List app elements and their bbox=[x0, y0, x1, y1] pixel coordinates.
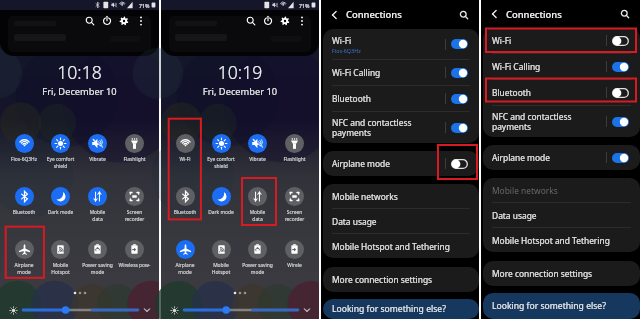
button[interactable]: Wi-Fi bbox=[612, 36, 629, 46]
button[interactable]: Wi-Fi Calling bbox=[451, 68, 468, 78]
staticText: Flashlight bbox=[276, 156, 313, 163]
button[interactable]: Bluetooth bbox=[612, 88, 629, 98]
button[interactable]: Expand bbox=[302, 305, 312, 315]
button[interactable]: Looking for something else? bbox=[483, 293, 640, 319]
button[interactable]: Airplane mode bbox=[612, 153, 629, 163]
button[interactable]: Airplane mode bbox=[167, 237, 203, 289]
staticText: Airplane mode bbox=[167, 262, 203, 275]
button[interactable]: Screen recorder bbox=[116, 184, 153, 237]
staticText: Mobile networks bbox=[492, 185, 558, 196]
button[interactable]: Eye comfort shield bbox=[203, 131, 239, 184]
button[interactable]: Back bbox=[327, 8, 341, 22]
button[interactable]: More options bbox=[294, 13, 310, 29]
staticText: Mobile networks bbox=[332, 191, 398, 202]
button[interactable]: Vibrate bbox=[239, 131, 276, 184]
staticText: Fios-6Q3Hz bbox=[6, 156, 42, 163]
button[interactable]: Power saving mode bbox=[239, 237, 276, 289]
staticText: More connection settings bbox=[492, 268, 593, 279]
button[interactable]: Mobile networks bbox=[323, 184, 479, 208]
staticText: 71% bbox=[139, 2, 150, 9]
button[interactable]: Wi-Fi bbox=[167, 131, 203, 184]
staticText: More connection settings bbox=[332, 274, 433, 285]
staticText: Mobile Hotspot and Tethering bbox=[332, 241, 450, 252]
staticText: Fri, December 10 bbox=[0, 85, 159, 98]
button[interactable]: Fios-6Q3Hz bbox=[6, 131, 42, 184]
button[interactable]: Eye comfort shield bbox=[42, 131, 79, 184]
button[interactable]: More options bbox=[133, 13, 149, 29]
staticText: 10:18 bbox=[0, 60, 159, 84]
button[interactable]: NFC and contactless payments bbox=[612, 117, 629, 127]
button[interactable]: Bluetooth bbox=[483, 80, 640, 105]
button[interactable]: Wirele bbox=[276, 237, 313, 289]
button[interactable] bbox=[184, 304, 298, 316]
button[interactable]: Bluetooth bbox=[167, 184, 203, 237]
button[interactable]: Vibrate bbox=[79, 131, 116, 184]
button[interactable]: Mobile Hotspot and Tethering bbox=[483, 228, 640, 252]
button[interactable]: Mobile Hotspot and Tethering bbox=[323, 234, 479, 258]
button[interactable]: NFC and contactless payments bbox=[323, 112, 479, 143]
button[interactable]: Airplane mode bbox=[451, 159, 468, 169]
button[interactable]: Screen recorder bbox=[276, 184, 313, 237]
button[interactable]: Mobile Hotspot bbox=[203, 237, 239, 289]
staticText: Mobile data bbox=[239, 209, 276, 222]
button[interactable]: Bluetooth bbox=[6, 184, 42, 237]
button[interactable]: Bluetooth bbox=[451, 94, 468, 104]
button[interactable]: Back bbox=[487, 7, 501, 21]
button[interactable]: Looking for something else? bbox=[323, 299, 479, 319]
button[interactable]: Mobile Hotspot bbox=[42, 237, 79, 289]
button[interactable]: More connection settings bbox=[323, 267, 479, 292]
button[interactable]: More connection settings bbox=[483, 261, 640, 286]
button[interactable]: Wi-Fi bbox=[323, 29, 479, 59]
staticText: Wi-Fi bbox=[492, 35, 512, 46]
button[interactable]: Power saving mode bbox=[79, 237, 116, 289]
staticText: Wi-Fi Calling bbox=[332, 67, 381, 78]
staticText: Airplane mode bbox=[6, 262, 42, 275]
button[interactable]: Flashlight bbox=[116, 131, 153, 184]
button[interactable]: Airplane mode bbox=[483, 145, 640, 170]
staticText: Looking for something else? bbox=[492, 300, 606, 312]
button[interactable]: Search bbox=[243, 13, 259, 29]
staticText: Data usage bbox=[492, 210, 537, 221]
button[interactable]: Wi-Fi bbox=[451, 39, 468, 49]
button[interactable]: Expand bbox=[142, 305, 152, 315]
staticText: Data usage bbox=[332, 216, 377, 227]
button[interactable]: Mobile networks bbox=[483, 178, 640, 202]
staticText: 10:19 bbox=[161, 60, 319, 84]
button[interactable]: Wireless pow- bbox=[116, 237, 153, 289]
button[interactable]: Search bbox=[618, 7, 632, 21]
button[interactable]: Wi-Fi Calling bbox=[483, 54, 640, 79]
button[interactable]: Settings bbox=[277, 13, 293, 29]
button[interactable]: Settings bbox=[116, 13, 132, 29]
button[interactable]: Search bbox=[457, 8, 471, 22]
button[interactable]: Data usage bbox=[483, 203, 640, 227]
button[interactable]: Dark mode bbox=[203, 184, 239, 237]
button[interactable]: Power off bbox=[99, 13, 115, 29]
staticText: Mobile Hotspot bbox=[42, 262, 79, 275]
staticText: Bluetooth bbox=[332, 93, 371, 104]
button[interactable]: NFC and contactless payments bbox=[451, 123, 468, 133]
staticText: Screen recorder bbox=[276, 209, 313, 222]
button[interactable]: Data usage bbox=[323, 209, 479, 233]
staticText: Fios-6Q3Hz bbox=[332, 47, 361, 54]
button[interactable]: Airplane mode bbox=[6, 237, 42, 289]
button[interactable]: Power off bbox=[260, 13, 276, 29]
staticText: Power saving mode bbox=[79, 262, 116, 275]
staticText: Dark mode bbox=[42, 209, 79, 216]
button[interactable]: Wi-Fi bbox=[483, 28, 640, 53]
button[interactable]: Dark mode bbox=[42, 184, 79, 237]
button[interactable]: Airplane mode bbox=[323, 151, 479, 176]
button[interactable]: Mobile data bbox=[79, 184, 116, 237]
staticText: 71% bbox=[299, 2, 310, 9]
button[interactable]: Wi-Fi Calling bbox=[323, 60, 479, 85]
button[interactable]: Flashlight bbox=[276, 131, 313, 184]
button[interactable]: Search bbox=[82, 13, 98, 29]
staticText: Airplane mode bbox=[332, 158, 390, 169]
staticText: Airplane mode bbox=[492, 152, 550, 163]
button[interactable]: NFC and contactless payments bbox=[483, 106, 640, 137]
staticText: Wireless pow- bbox=[116, 262, 153, 269]
button[interactable] bbox=[23, 304, 138, 316]
button[interactable]: Bluetooth bbox=[323, 86, 479, 111]
button[interactable]: Wi-Fi Calling bbox=[612, 62, 629, 72]
button[interactable]: Mobile data bbox=[239, 184, 276, 237]
staticText: Eye comfort shield bbox=[203, 156, 239, 169]
